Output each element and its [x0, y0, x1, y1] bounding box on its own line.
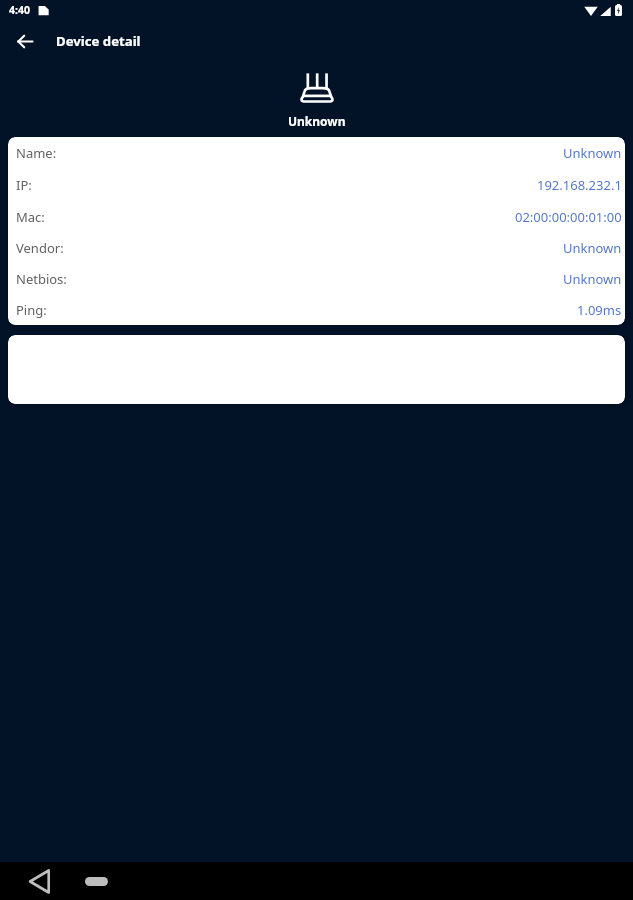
staticText: Unknown — [563, 144, 622, 162]
staticText: Name: — [16, 144, 57, 162]
staticText: 1.09ms — [577, 301, 622, 319]
button[interactable]: Vendor: — [8, 232, 625, 263]
staticText: Vendor: — [16, 239, 64, 257]
button[interactable]: Mac: — [8, 201, 625, 232]
button[interactable]: IP: — [8, 169, 625, 201]
staticText: Device detail — [56, 32, 141, 50]
staticText: Mac: — [16, 208, 45, 226]
button[interactable]: Back — [23, 865, 55, 897]
staticText: Unknown — [563, 239, 622, 257]
button[interactable]: Netbios: — [8, 263, 625, 294]
staticText: 02:00:00:00:01:00 — [515, 208, 622, 226]
staticText: Unknown — [563, 270, 622, 288]
staticText: IP: — [16, 176, 32, 194]
staticText: Unknown — [288, 113, 346, 129]
staticText: Ping: — [16, 301, 47, 319]
button[interactable]: Back — [7, 23, 43, 59]
button[interactable]: Ping: — [8, 294, 625, 325]
staticText: 4:40 — [9, 3, 30, 17]
staticText: Netbios: — [16, 270, 67, 288]
staticText: 192.168.232.1 — [537, 176, 622, 194]
button[interactable]: Home — [80, 865, 112, 897]
button[interactable]: Name: — [8, 137, 625, 169]
